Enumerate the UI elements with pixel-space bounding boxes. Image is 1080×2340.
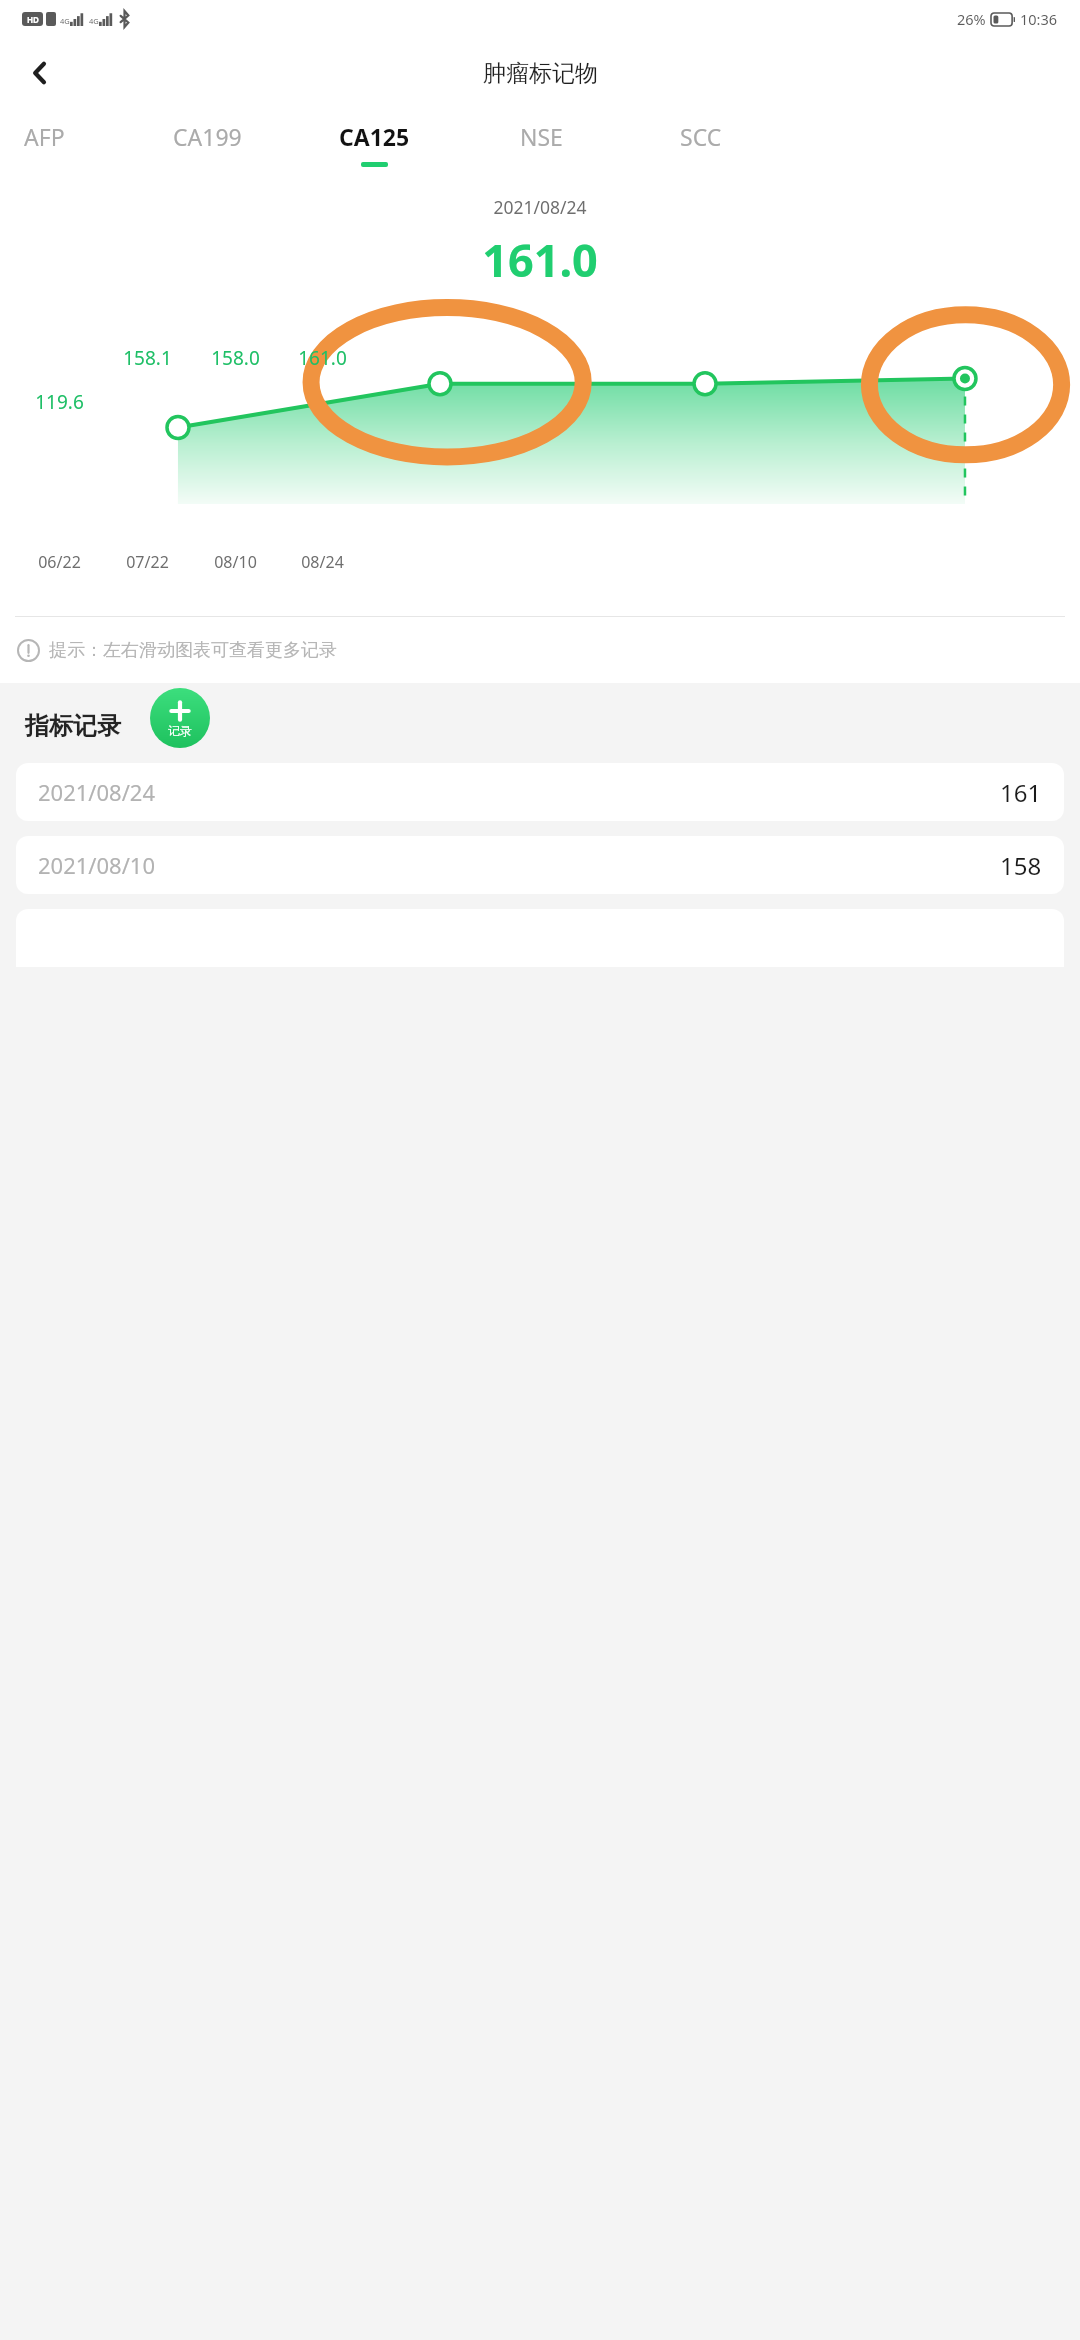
- staticText: 158.0: [211, 345, 260, 371]
- staticText: NSE: [520, 121, 563, 152]
- button[interactable]: AFP: [0, 109, 94, 179]
- staticText: 26%: [957, 9, 986, 29]
- staticText: 4G: [89, 16, 99, 26]
- button[interactable]: NSE: [491, 109, 591, 179]
- staticText: 06/22: [38, 551, 81, 573]
- staticText: 158.1: [123, 345, 172, 371]
- staticText: 肿瘤标记物: [483, 59, 598, 88]
- staticText: SCC: [680, 121, 722, 152]
- button[interactable]: CA199: [157, 109, 257, 179]
- button[interactable]: 记录: [150, 688, 210, 748]
- staticText: 提示：左右滑动图表可查看更多记录: [49, 639, 337, 662]
- staticText: AFP: [24, 121, 65, 152]
- staticText: 161.0: [298, 345, 347, 371]
- staticText: 161.0: [0, 229, 1080, 290]
- staticText: 161: [1000, 776, 1042, 809]
- staticText: 记录: [168, 723, 192, 738]
- staticText: 指标记录: [25, 711, 121, 741]
- button[interactable]: 2021/08/10: [16, 836, 1064, 894]
- staticText: 158: [1000, 849, 1042, 882]
- staticText: 10:36: [1020, 9, 1058, 29]
- staticText: 2021/08/10: [38, 850, 156, 880]
- staticText: HD: [27, 14, 39, 25]
- staticText: 2021/08/24: [0, 195, 1080, 219]
- staticText: 119.6: [35, 389, 84, 415]
- button[interactable]: 2021/08/24: [16, 763, 1064, 821]
- button[interactable]: CA125: [324, 109, 424, 179]
- staticText: 2021/08/24: [38, 777, 156, 807]
- staticText: 07/22: [126, 551, 169, 573]
- staticText: CA199: [173, 121, 242, 152]
- staticText: CA125: [339, 121, 410, 152]
- button[interactable]: 返回: [14, 47, 66, 99]
- button[interactable]: SCC: [651, 109, 751, 179]
- staticText: 4G: [60, 16, 70, 26]
- staticText: 08/24: [301, 551, 344, 573]
- staticText: 08/10: [214, 551, 257, 573]
